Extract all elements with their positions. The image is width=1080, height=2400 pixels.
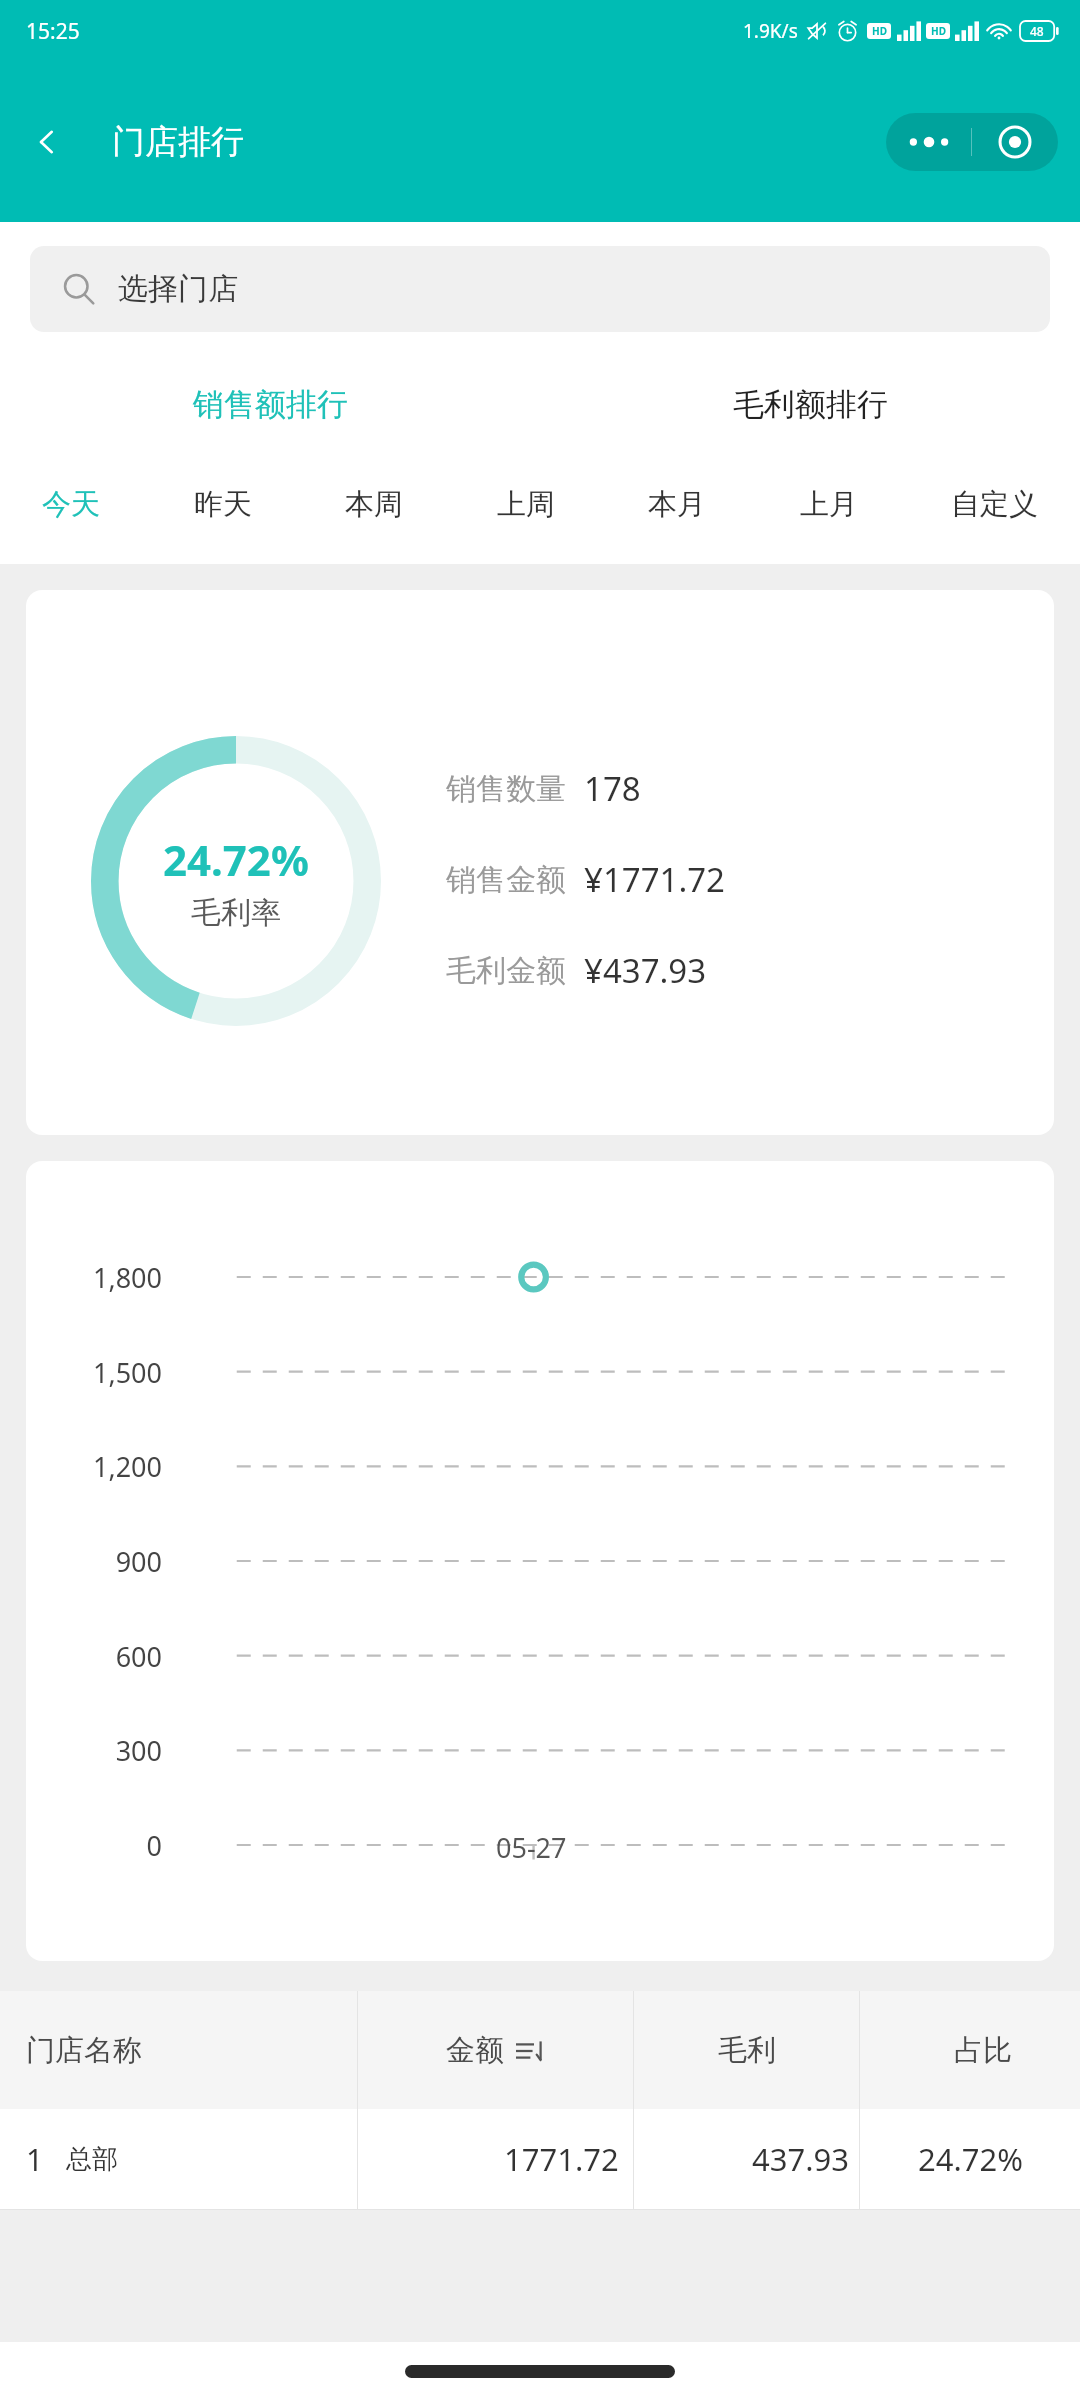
staticText: 毛利 xyxy=(718,2032,776,2069)
staticText: 选择门店 xyxy=(118,270,238,308)
staticText: 上月 xyxy=(800,486,858,523)
staticText: 毛利率 xyxy=(191,894,281,932)
staticText: 0 xyxy=(26,1827,162,1864)
staticText: 600 xyxy=(26,1638,162,1675)
staticText: 1771.72 xyxy=(504,2138,619,2180)
staticText: 总部 xyxy=(66,2143,118,2176)
staticText: 昨天 xyxy=(194,486,252,523)
staticText: 毛利金额 xyxy=(446,952,566,990)
staticText: 1.9K/s xyxy=(743,18,798,44)
button[interactable]: 自定义 xyxy=(945,474,1044,535)
staticText: 1,800 xyxy=(26,1259,162,1296)
staticText: 自定义 xyxy=(951,486,1038,523)
staticText: 占比 xyxy=(954,2032,1012,2069)
staticText: 900 xyxy=(26,1543,162,1580)
button[interactable]: 销售额排行 xyxy=(0,356,540,452)
button[interactable]: 本周 xyxy=(339,474,409,535)
button[interactable]: Close xyxy=(972,113,1058,171)
staticText: 178 xyxy=(584,766,641,811)
staticText: 48 xyxy=(1030,23,1044,39)
staticText: 05-27 xyxy=(496,1829,567,1866)
staticText: ¥1771.72 xyxy=(584,857,725,902)
staticText: 1,200 xyxy=(26,1448,162,1485)
button[interactable]: 上月 xyxy=(794,474,864,535)
button[interactable]: 毛利额排行 xyxy=(540,356,1080,452)
button[interactable]: Back xyxy=(14,115,80,169)
staticText: ¥437.93 xyxy=(584,948,707,993)
staticText: 15:25 xyxy=(26,17,80,46)
staticText: 金额 xyxy=(446,2032,504,2069)
staticText: HD xyxy=(872,24,887,38)
staticText: 24.72% xyxy=(918,2138,1023,2180)
staticText: 1,500 xyxy=(26,1354,162,1391)
staticText: 销售额排行 xyxy=(193,385,348,424)
staticText: 门店排行 xyxy=(112,121,244,163)
button[interactable]: 毛利 xyxy=(634,1991,859,2109)
staticText: 毛利额排行 xyxy=(733,385,888,424)
button[interactable]: More xyxy=(886,113,971,171)
staticText: 销售数量 xyxy=(446,770,566,808)
staticText: 437.93 xyxy=(752,2138,849,2180)
button[interactable]: 占比 xyxy=(860,1991,1080,2109)
staticText: HD xyxy=(931,24,946,38)
button[interactable]: 今天 xyxy=(36,474,106,535)
button[interactable]: 金额 xyxy=(358,1991,633,2109)
button[interactable]: 选择门店 xyxy=(30,246,1050,332)
button[interactable]: 门店名称 xyxy=(0,1991,357,2109)
staticText: 本月 xyxy=(648,486,706,523)
button[interactable]: 上周 xyxy=(491,474,561,535)
staticText: 销售金额 xyxy=(446,861,566,899)
staticText: 门店名称 xyxy=(26,2032,142,2069)
button[interactable]: 昨天 xyxy=(188,474,258,535)
button[interactable]: 本月 xyxy=(642,474,712,535)
staticText: 24.72% xyxy=(163,831,309,888)
staticText: 300 xyxy=(26,1732,162,1769)
staticText: 本周 xyxy=(345,486,403,523)
staticText: 1 xyxy=(26,2139,44,2180)
staticText: 上周 xyxy=(497,486,555,523)
button[interactable]: 1 xyxy=(0,2109,1080,2209)
staticText: 今天 xyxy=(42,486,100,523)
